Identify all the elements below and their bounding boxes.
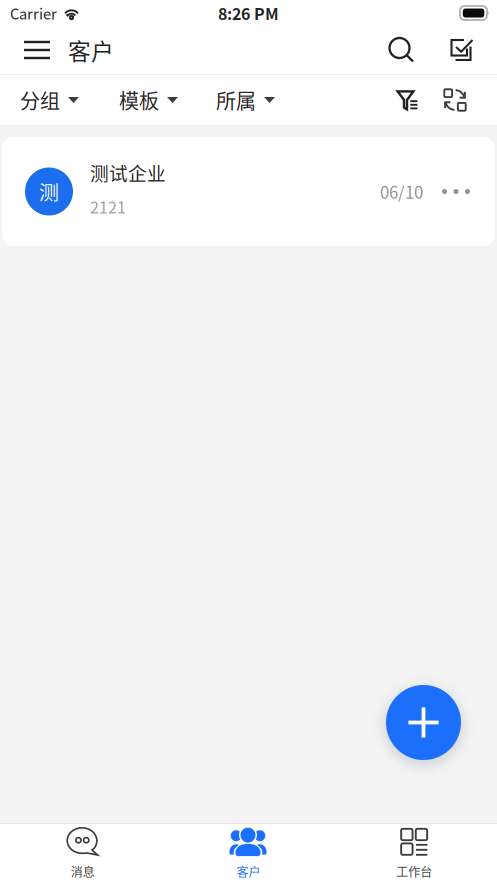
- button[interactable]: 测: [2, 137, 495, 246]
- staticText: 测: [39, 177, 59, 206]
- staticText: 06/10: [380, 179, 423, 203]
- button[interactable]: Menu: [14, 26, 60, 74]
- button[interactable]: Search: [378, 26, 425, 74]
- button[interactable]: 消息: [0, 824, 166, 883]
- staticText: 客户: [236, 863, 260, 880]
- staticText: 客户: [68, 34, 114, 66]
- button[interactable]: 所属: [214, 78, 277, 122]
- staticText: Carrier: [10, 2, 57, 24]
- button[interactable]: Transfer: [433, 78, 477, 122]
- button[interactable]: 工作台: [331, 824, 497, 883]
- button[interactable]: 模板: [117, 78, 180, 122]
- staticText: 测试企业: [90, 159, 166, 186]
- button[interactable]: Tasks: [438, 26, 485, 74]
- staticText: 8:26 PM: [218, 1, 279, 25]
- button[interactable]: Filter: [386, 78, 430, 122]
- button[interactable]: 分组: [18, 78, 81, 122]
- button[interactable]: 客户: [166, 824, 331, 883]
- staticText: 2121: [90, 195, 126, 218]
- button[interactable]: Add customer: [386, 685, 461, 760]
- staticText: 消息: [71, 863, 95, 880]
- staticText: 工作台: [396, 863, 432, 880]
- staticText: 模板: [119, 85, 159, 114]
- staticText: 所属: [216, 85, 256, 114]
- staticText: 分组: [20, 85, 60, 114]
